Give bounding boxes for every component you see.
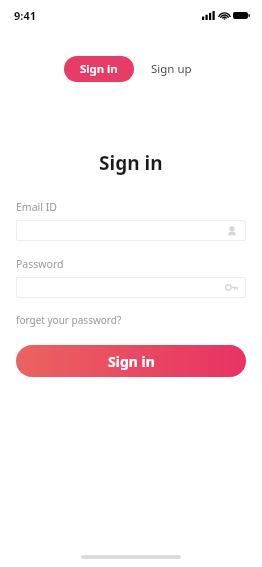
staticText: Sign in [108,352,155,371]
button[interactable]: Sign up [145,56,198,82]
staticText: Email ID [16,200,57,214]
button[interactable]: Email ID [16,220,246,241]
staticText: Sign in [80,61,118,77]
staticText: Sign up [151,61,192,77]
button[interactable]: Password [16,277,246,298]
button[interactable]: Sign in [64,56,134,82]
staticText: forget your password? [16,313,122,327]
button[interactable]: Sign in [16,345,246,377]
staticText: Sign in [99,150,163,176]
button[interactable]: forget your password? [16,311,122,329]
staticText: 9:41 [14,8,36,23]
staticText: Password [16,257,64,271]
